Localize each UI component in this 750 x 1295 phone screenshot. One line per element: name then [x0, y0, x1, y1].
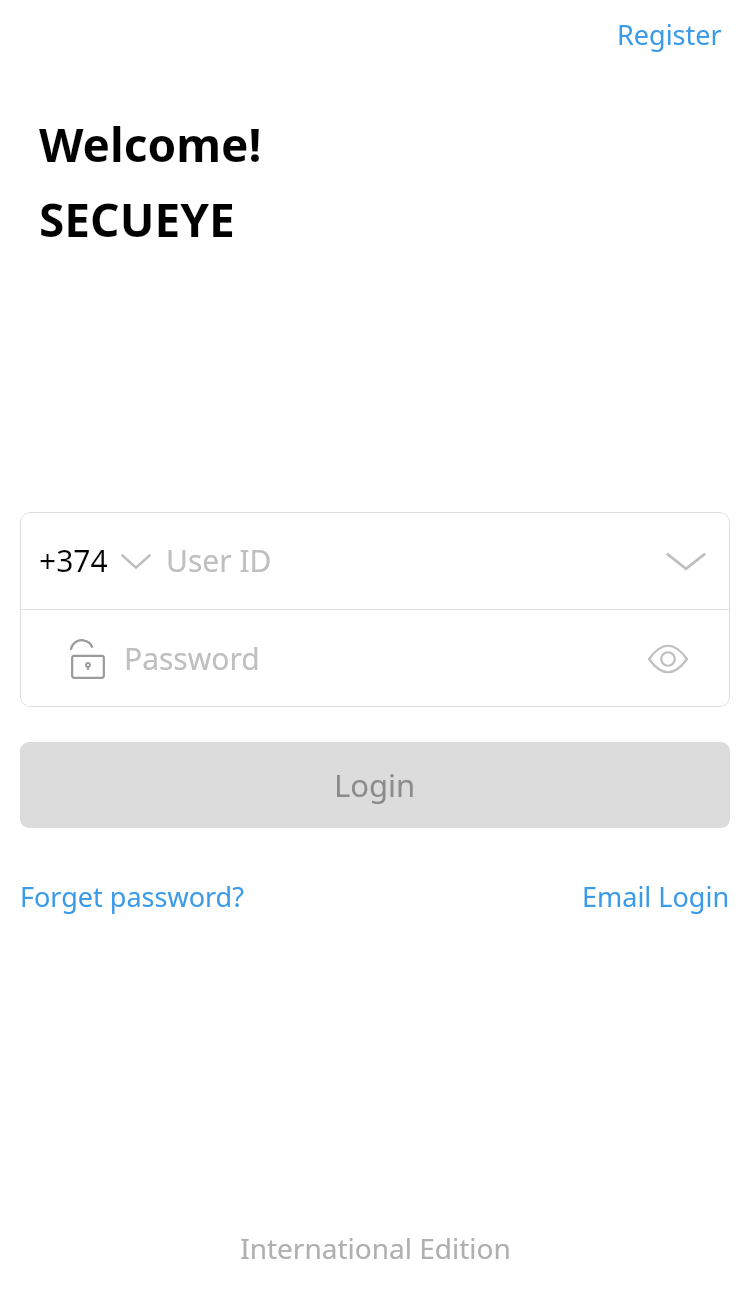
staticText: +374	[39, 540, 108, 581]
staticText: Register	[617, 16, 722, 53]
staticText: Password	[124, 638, 260, 679]
button[interactable]: Email Login	[570, 868, 742, 925]
button[interactable]: Register	[603, 6, 736, 63]
staticText: Forget password?	[20, 878, 244, 915]
staticText: International Edition	[240, 1229, 511, 1267]
button[interactable]: Password	[20, 610, 730, 707]
staticText: SECUEYE	[39, 188, 235, 251]
button[interactable]: Forget password?	[8, 868, 256, 925]
staticText: Welcome!	[39, 113, 262, 176]
staticText: User ID	[166, 540, 272, 581]
staticText: Login	[334, 764, 416, 806]
staticText: Email Login	[582, 878, 730, 915]
button[interactable]: +374	[20, 512, 730, 609]
other: Select saved account	[664, 548, 708, 574]
button[interactable]: International Edition	[226, 1223, 525, 1273]
button[interactable]: Login	[20, 742, 730, 828]
button[interactable]: Show password	[642, 633, 694, 685]
